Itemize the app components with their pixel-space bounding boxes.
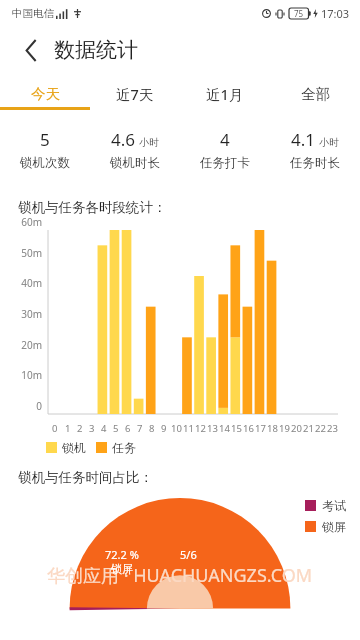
- staticText: 任务: [112, 440, 136, 455]
- staticText: 7: [137, 422, 143, 435]
- staticText: 17: [255, 422, 266, 435]
- staticText: 0: [52, 422, 58, 435]
- staticText: 13: [207, 422, 218, 435]
- staticText: 23: [327, 422, 338, 435]
- staticText: 21: [303, 422, 314, 435]
- staticText: 5: [113, 422, 119, 435]
- staticText: 10m: [0, 368, 42, 382]
- staticText: 60m: [0, 215, 42, 229]
- staticText: 中国电信: [12, 7, 54, 20]
- staticText: 考试: [322, 498, 346, 513]
- staticText: 近1月: [206, 84, 244, 104]
- staticText: 小时: [319, 136, 339, 149]
- button[interactable]: 近1月: [180, 74, 270, 114]
- button[interactable]: 4: [180, 128, 270, 171]
- staticText: 18: [267, 422, 278, 435]
- staticText: 11: [183, 422, 194, 435]
- button[interactable]: 今天: [0, 74, 90, 114]
- button[interactable]: 近7天: [90, 74, 180, 114]
- staticText: 4.6: [111, 128, 136, 151]
- staticText: 4.1: [291, 128, 316, 151]
- staticText: 锁机: [62, 440, 86, 455]
- staticText: 10: [171, 422, 182, 435]
- staticText: 5/6: [180, 547, 197, 562]
- button[interactable]: 5: [0, 128, 90, 171]
- staticText: 2: [77, 422, 83, 435]
- staticText: 1: [65, 422, 71, 435]
- staticText: 50m: [0, 246, 42, 260]
- staticText: 今天: [31, 85, 60, 103]
- staticText: 全部: [301, 85, 330, 103]
- button[interactable]: Back: [14, 33, 48, 67]
- staticText: 0: [0, 399, 42, 413]
- staticText: 22: [315, 422, 326, 435]
- staticText: 30m: [0, 307, 42, 321]
- staticText: 任务时长: [290, 155, 340, 171]
- button[interactable]: 全部: [270, 74, 360, 114]
- staticText: 任务打卡: [200, 155, 250, 171]
- staticText: 72.2 %: [105, 547, 139, 562]
- staticText: 6: [125, 422, 131, 435]
- button[interactable]: 4.1: [270, 128, 360, 171]
- staticText: 小时: [139, 136, 159, 149]
- staticText: 锁机与任务时间占比：: [18, 469, 153, 486]
- staticText: 16: [243, 422, 254, 435]
- staticText: 数据统计: [54, 37, 138, 63]
- staticText: 4: [101, 422, 107, 435]
- staticText: 9: [161, 422, 167, 435]
- staticText: 华创应用 · HUACHUANGZS.COM: [47, 563, 313, 588]
- staticText: 17:03: [321, 6, 350, 21]
- staticText: 3: [89, 422, 95, 435]
- staticText: 4: [220, 128, 230, 151]
- staticText: 20m: [0, 338, 42, 352]
- button[interactable]: 4.6: [90, 128, 180, 171]
- staticText: 锁屏: [111, 562, 133, 576]
- staticText: 锁机次数: [20, 155, 70, 171]
- staticText: 20: [291, 422, 302, 435]
- staticText: 40m: [0, 276, 42, 290]
- staticText: 锁机与任务各时段统计：: [18, 199, 167, 216]
- staticText: 锁机时长: [110, 155, 160, 171]
- staticText: 5: [40, 128, 50, 151]
- staticText: 12: [195, 422, 206, 435]
- staticText: 15: [231, 422, 242, 435]
- staticText: 75: [294, 8, 304, 19]
- staticText: 14: [219, 422, 230, 435]
- staticText: 锁屏: [322, 519, 346, 534]
- staticText: 近7天: [116, 84, 154, 104]
- staticText: 8: [149, 422, 155, 435]
- staticText: 19: [279, 422, 290, 435]
